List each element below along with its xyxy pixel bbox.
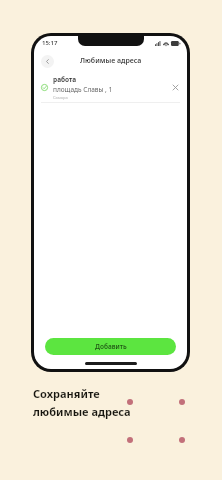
button[interactable]: Добавить: [45, 338, 176, 355]
button[interactable]: Delete: [170, 82, 180, 92]
button[interactable]: работа: [34, 72, 187, 102]
button[interactable]: Back: [41, 55, 54, 68]
staticText: Любимые адреса: [80, 56, 142, 66]
staticText: площадь Славы , 1: [53, 85, 113, 94]
staticText: любимые адреса: [33, 404, 131, 419]
staticText: работа: [53, 75, 77, 84]
staticText: Добавить: [95, 342, 127, 351]
staticText: 15:17: [42, 39, 58, 47]
staticText: Сохраняйте: [33, 386, 100, 401]
staticText: Самара: [53, 95, 68, 100]
